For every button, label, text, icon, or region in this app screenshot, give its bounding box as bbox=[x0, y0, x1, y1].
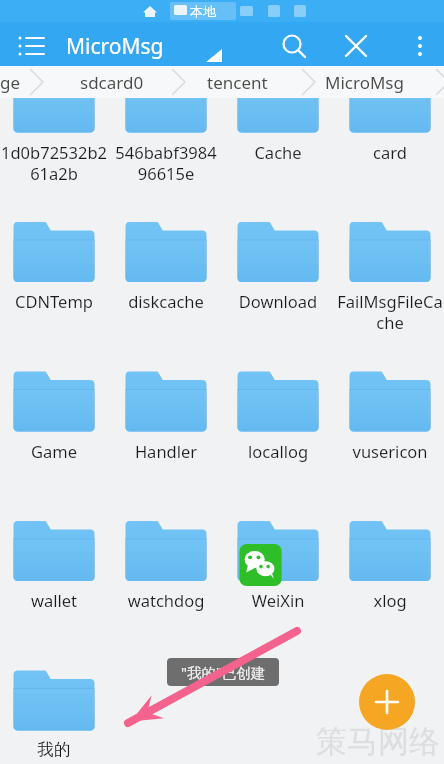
button[interactable]: MicroMsg bbox=[325, 66, 435, 98]
staticText: vusericon bbox=[336, 440, 444, 488]
staticText: CDNTemp bbox=[0, 290, 108, 338]
button[interactable]: CDNTemp bbox=[0, 214, 110, 332]
staticText: wallet bbox=[0, 589, 108, 637]
staticText: watchdog bbox=[112, 589, 220, 637]
button[interactable]: Cache bbox=[222, 65, 334, 183]
button[interactable]: Download bbox=[222, 214, 334, 332]
button[interactable]: ge bbox=[0, 66, 110, 98]
staticText: 策马网络 bbox=[316, 722, 440, 761]
staticText: Download bbox=[224, 290, 332, 338]
button[interactable]: FailMsgFileCache bbox=[334, 214, 444, 332]
staticText: Game bbox=[0, 440, 108, 488]
staticText: MicroMsg bbox=[325, 71, 404, 94]
staticText: diskcache bbox=[112, 290, 220, 338]
button[interactable]: card bbox=[334, 65, 444, 183]
staticText: locallog bbox=[224, 440, 332, 488]
staticText: 546babf398496615e bbox=[112, 141, 220, 189]
staticText: FailMsgFileCache bbox=[336, 290, 444, 338]
staticText: 1d0b72532b261a2b bbox=[0, 141, 108, 189]
button[interactable]: Add bbox=[359, 674, 415, 730]
staticText: xlog bbox=[336, 589, 444, 637]
button[interactable]: locallog bbox=[222, 364, 334, 482]
button[interactable]: vusericon bbox=[334, 364, 444, 482]
button[interactable]: 我的 bbox=[0, 663, 110, 764]
button[interactable]: tencent bbox=[207, 66, 317, 98]
button[interactable]: 546babf398496615e bbox=[110, 65, 222, 183]
button[interactable]: watchdog bbox=[110, 513, 222, 631]
button[interactable]: 1d0b72532b261a2b bbox=[0, 65, 110, 183]
staticText: Handler bbox=[112, 440, 220, 488]
staticText: Cache bbox=[224, 141, 332, 189]
button[interactable]: WeiXin bbox=[222, 513, 334, 631]
staticText: WeiXin bbox=[224, 589, 332, 637]
button[interactable]: xlog bbox=[334, 513, 444, 631]
button[interactable]: Handler bbox=[110, 364, 222, 482]
staticText: 我的 bbox=[0, 739, 108, 764]
staticText: ge bbox=[0, 71, 21, 94]
staticText: MicroMsg bbox=[66, 32, 164, 61]
staticText: card bbox=[336, 141, 444, 189]
button[interactable]: Close bbox=[334, 24, 378, 68]
button[interactable]: sdcard0 bbox=[80, 66, 190, 98]
button[interactable]: diskcache bbox=[110, 214, 222, 332]
staticText: 本地 bbox=[190, 3, 216, 19]
staticText: "我的"已创建 bbox=[181, 662, 266, 682]
staticText: tencent bbox=[207, 71, 268, 94]
button[interactable]: More options bbox=[398, 24, 438, 68]
button[interactable]: Search bbox=[272, 24, 316, 68]
button[interactable]: MicroMsg bbox=[66, 26, 246, 66]
button[interactable]: Game bbox=[0, 364, 110, 482]
button[interactable]: Menu bbox=[10, 26, 54, 66]
button[interactable]: wallet bbox=[0, 513, 110, 631]
staticText: sdcard0 bbox=[80, 71, 144, 94]
